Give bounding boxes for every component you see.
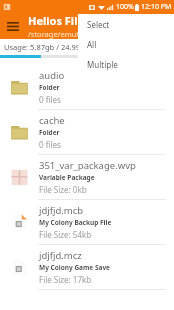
staticText: File Size: 0kb bbox=[39, 184, 87, 195]
staticText: Usage: 5.87gb / 24.99gb (19.12gb Free) bbox=[4, 42, 142, 52]
button[interactable]: Select bbox=[78, 14, 174, 34]
staticText: Folder bbox=[39, 83, 60, 92]
staticText: 351_var_package.wvp bbox=[39, 159, 136, 172]
staticText: File Size: 17kb bbox=[39, 274, 92, 285]
staticText: audio bbox=[39, 69, 65, 82]
button[interactable]: Open navigation drawer bbox=[0, 13, 26, 39]
staticText: Helios File Manager bbox=[28, 13, 136, 28]
staticText: 0 files bbox=[39, 139, 61, 150]
staticText: Variable Package bbox=[39, 173, 95, 182]
button[interactable]: jdjfjd.mcb bbox=[0, 200, 174, 244]
staticText: File Size: 54kb bbox=[39, 229, 92, 240]
staticText: 100% bbox=[116, 2, 134, 12]
staticText: /storage/emulated/0 bbox=[28, 29, 102, 39]
staticText: 0 files bbox=[39, 94, 61, 105]
button[interactable]: audio bbox=[0, 65, 174, 109]
staticText: 12:10 PM bbox=[141, 2, 172, 12]
staticText: My Colony Game Save bbox=[39, 263, 110, 272]
staticText: cache bbox=[39, 114, 65, 127]
staticText: jdjfjd.mcb bbox=[39, 204, 84, 217]
button[interactable]: Multiple bbox=[78, 54, 174, 74]
staticText: My Colony Backup File bbox=[39, 218, 112, 227]
staticText: All bbox=[87, 39, 97, 50]
staticText: Select bbox=[87, 19, 110, 30]
button[interactable]: All bbox=[78, 34, 174, 54]
button[interactable]: jdjfjd.mcz bbox=[0, 245, 174, 289]
button[interactable]: 351_var_package.wvp bbox=[0, 155, 174, 199]
button[interactable]: cache bbox=[0, 110, 174, 154]
staticText: Folder bbox=[39, 128, 60, 137]
staticText: Multiple bbox=[87, 59, 118, 70]
staticText: jdjfjd.mcz bbox=[39, 249, 82, 262]
